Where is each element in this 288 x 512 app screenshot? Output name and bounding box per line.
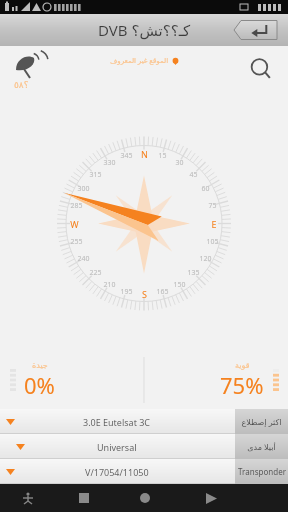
staticText: 255: [70, 237, 83, 247]
staticText: الموقع غير المعروف: [110, 56, 169, 66]
staticText: 30: [175, 158, 184, 168]
staticText: اكثر إصطلاع: [241, 416, 282, 427]
staticText: ؟٥٨: [14, 80, 29, 90]
staticText: 300: [77, 184, 90, 194]
staticText: 195: [120, 287, 133, 297]
button[interactable]: Accessibility: [0, 484, 56, 512]
staticText: 315: [89, 170, 102, 180]
button[interactable]: اكثر إصطلاع: [235, 409, 288, 434]
staticText: 225: [89, 268, 102, 278]
staticText: 60: [201, 184, 210, 194]
staticText: أبيلا مدى: [247, 441, 276, 452]
button[interactable]: Home: [112, 484, 178, 512]
staticText: 75%: [220, 370, 264, 400]
staticText: 330: [103, 158, 116, 168]
staticText: 0%: [24, 370, 55, 400]
staticText: جيدة: [32, 361, 48, 370]
staticText: N: [141, 148, 148, 160]
staticText: S: [142, 288, 147, 300]
button[interactable]: الموقع غير المعروف: [110, 56, 179, 66]
button[interactable]: Recents: [56, 484, 112, 512]
button[interactable]: Search: [248, 56, 274, 82]
staticText: E: [211, 218, 217, 230]
staticText: قوية: [235, 361, 250, 370]
button[interactable]: Back: [178, 484, 244, 512]
staticText: 150: [173, 280, 186, 290]
button[interactable]: Transponder: [235, 459, 288, 484]
staticText: 45: [189, 170, 198, 180]
staticText: Transponder: [238, 466, 286, 477]
button[interactable]: 3.0E Eutelsat 3C: [0, 409, 288, 434]
staticText: 285: [70, 201, 83, 211]
staticText: V/17054/11050: [85, 466, 149, 478]
button[interactable]: V/17054/11050: [0, 459, 288, 484]
staticText: W: [70, 218, 79, 230]
button[interactable]: Back: [234, 19, 280, 41]
button[interactable]: Universal: [0, 434, 288, 459]
button[interactable]: Satellite dish: [14, 52, 44, 90]
staticText: 120: [199, 254, 212, 264]
button[interactable]: أبيلا مدى: [235, 434, 288, 459]
staticText: 165: [156, 287, 169, 297]
staticText: 105: [206, 237, 219, 247]
staticText: 210: [103, 280, 116, 290]
staticText: Universal: [97, 441, 137, 453]
staticText: 75: [208, 201, 217, 211]
staticText: 135: [187, 268, 200, 278]
staticText: 15: [158, 151, 167, 161]
staticText: DVB كـ؟؟تش؟: [98, 20, 191, 40]
staticText: 3.0E Eutelsat 3C: [83, 416, 151, 428]
staticText: 240: [77, 254, 90, 264]
staticText: 345: [120, 151, 133, 161]
